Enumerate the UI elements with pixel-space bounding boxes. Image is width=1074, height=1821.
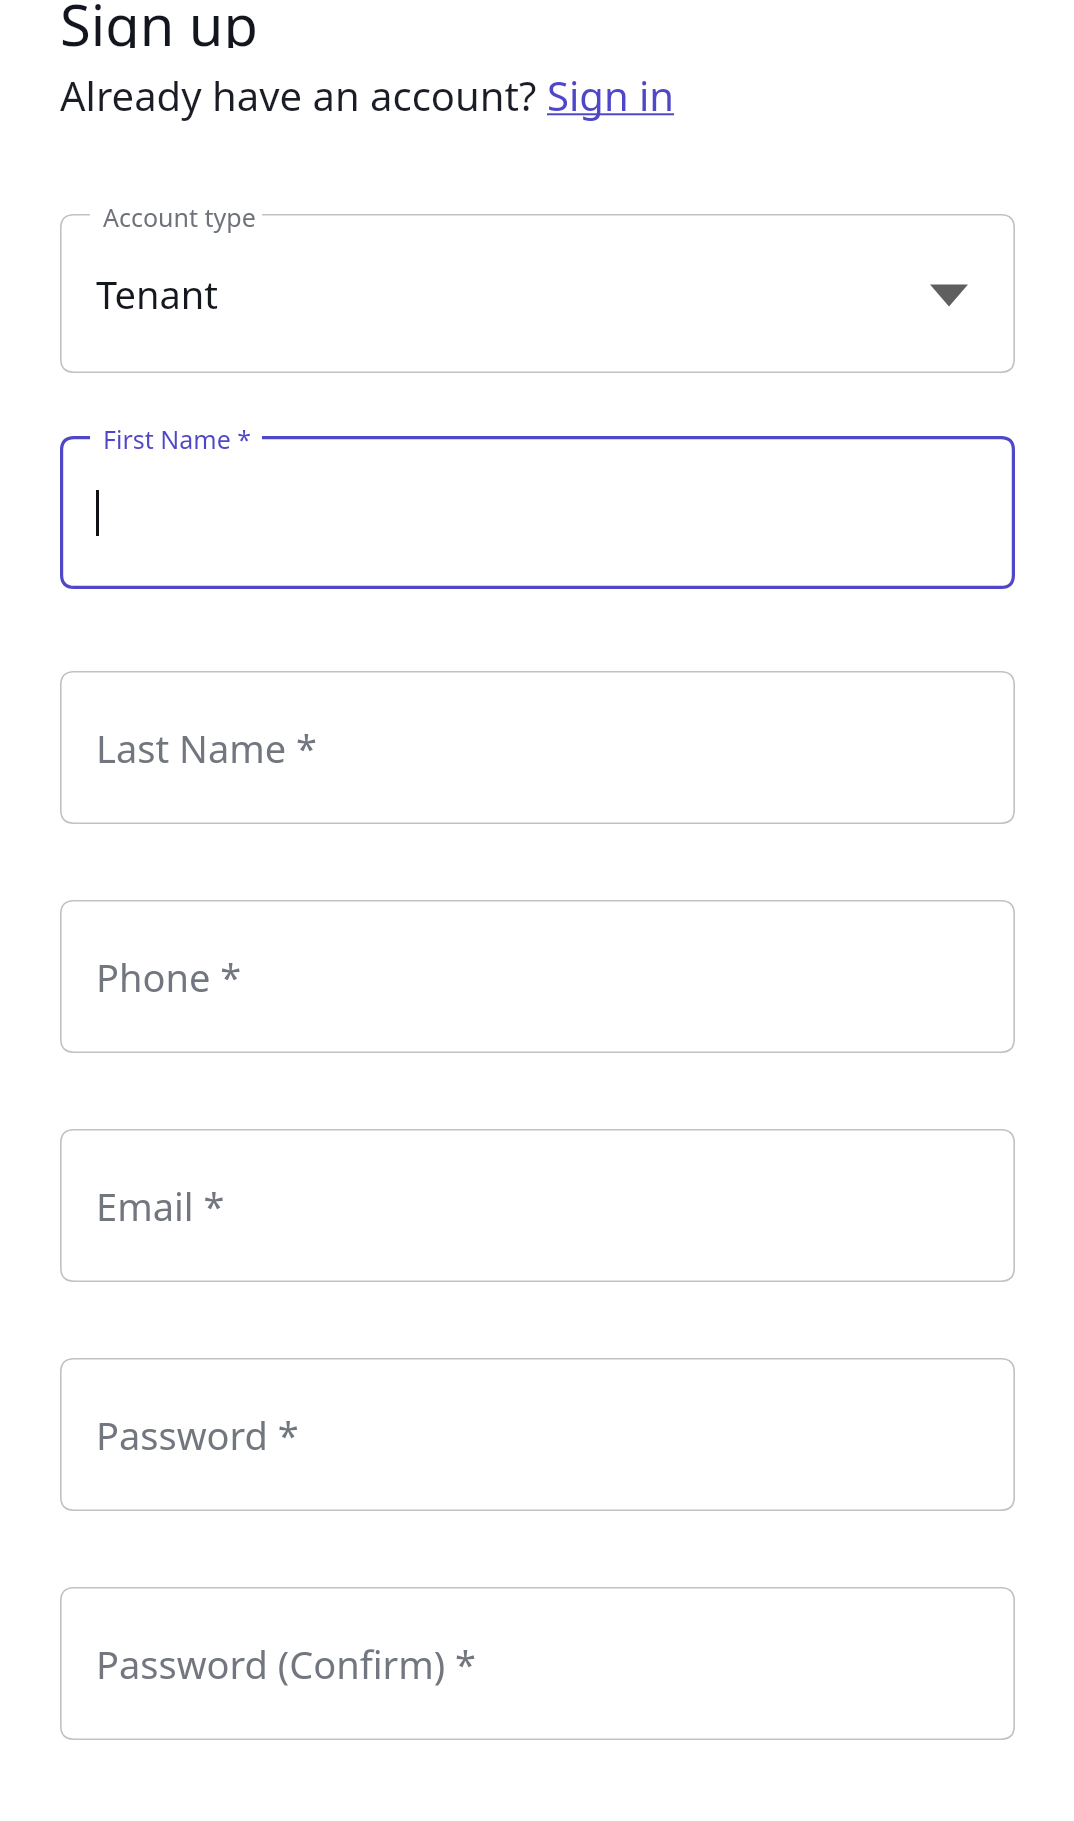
button[interactable]: Phone * bbox=[60, 900, 1015, 1053]
staticText: Account type bbox=[103, 200, 256, 234]
staticText: Password * bbox=[96, 1409, 299, 1461]
button[interactable]: Sign in bbox=[547, 68, 675, 122]
button[interactable]: Email * bbox=[60, 1129, 1015, 1282]
button[interactable]: Last Name * bbox=[60, 671, 1015, 824]
staticText: First Name * bbox=[103, 422, 252, 456]
button[interactable]: Password (Confirm) * bbox=[60, 1587, 1015, 1740]
button[interactable]: First Name * bbox=[60, 436, 1015, 589]
staticText: Already have an account? bbox=[60, 68, 547, 122]
other: Account type bbox=[60, 214, 1015, 373]
staticText: Phone * bbox=[96, 951, 242, 1003]
staticText: Sign in bbox=[547, 68, 675, 122]
staticText: Sign up bbox=[60, 0, 258, 48]
button[interactable]: Password * bbox=[60, 1358, 1015, 1511]
staticText: Password (Confirm) * bbox=[96, 1638, 476, 1690]
staticText: Tenant bbox=[96, 268, 218, 320]
staticText: Email * bbox=[96, 1180, 225, 1232]
staticText: Last Name * bbox=[96, 722, 318, 774]
button[interactable]: Account type bbox=[60, 214, 1015, 373]
